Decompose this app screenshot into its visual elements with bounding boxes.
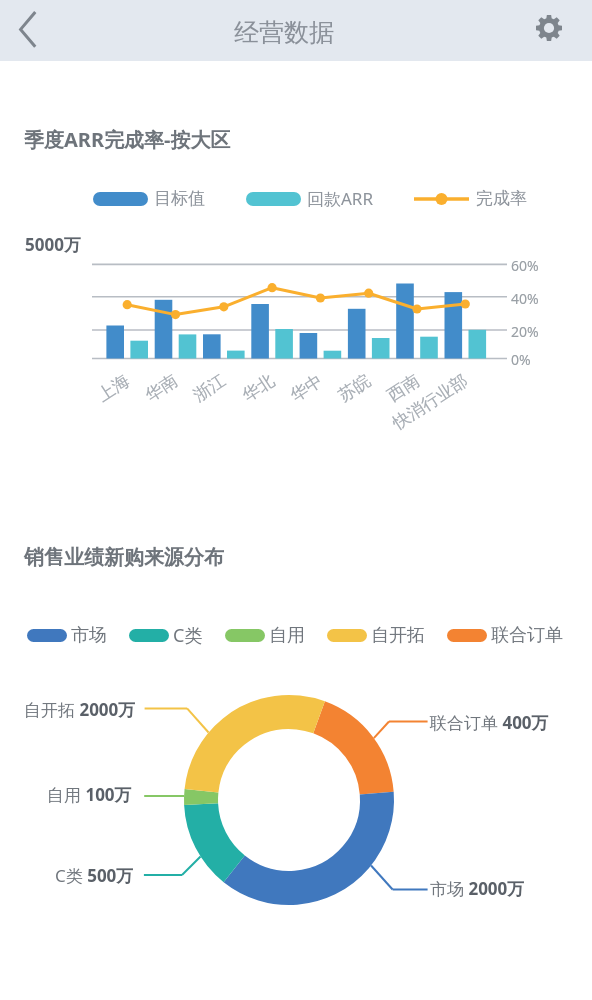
staticText: 西南 bbox=[383, 370, 423, 406]
button[interactable]: Back bbox=[0, 0, 55, 61]
staticText: 季度ARR完成率-按大区 bbox=[24, 126, 231, 153]
staticText: 回款ARR bbox=[307, 187, 374, 210]
staticText: 20% bbox=[511, 322, 539, 341]
staticText: 自开拓 2000万 bbox=[24, 698, 136, 721]
staticText: 上海 bbox=[93, 370, 133, 406]
staticText: 经营数据 bbox=[234, 17, 334, 48]
staticText: 市场 2000万 bbox=[430, 877, 525, 900]
staticText: 5000万 bbox=[25, 233, 81, 256]
staticText: 联合订单 400万 bbox=[430, 711, 549, 734]
staticText: 60% bbox=[511, 256, 539, 275]
staticText: 0% bbox=[511, 350, 531, 369]
staticText: C类 500万 bbox=[55, 864, 134, 887]
staticText: 自用 100万 bbox=[47, 783, 132, 806]
button[interactable]: Settings bbox=[528, 8, 570, 50]
staticText: 40% bbox=[511, 289, 539, 308]
staticText: C类 bbox=[173, 623, 203, 647]
staticText: 自开拓 bbox=[371, 624, 425, 647]
staticText: 苏皖 bbox=[334, 370, 374, 406]
staticText: 浙江 bbox=[189, 370, 229, 406]
staticText: 市场 bbox=[71, 624, 107, 647]
staticText: 销售业绩新购来源分布 bbox=[24, 545, 224, 570]
staticText: 华北 bbox=[238, 370, 278, 406]
staticText: 华中 bbox=[286, 370, 326, 406]
staticText: 快消行业部 bbox=[389, 370, 471, 434]
staticText: 自用 bbox=[269, 624, 305, 647]
staticText: 华南 bbox=[141, 370, 181, 406]
staticText: 目标值 bbox=[154, 188, 205, 209]
staticText: 联合订单 bbox=[491, 624, 563, 647]
staticText: 完成率 bbox=[476, 188, 527, 209]
